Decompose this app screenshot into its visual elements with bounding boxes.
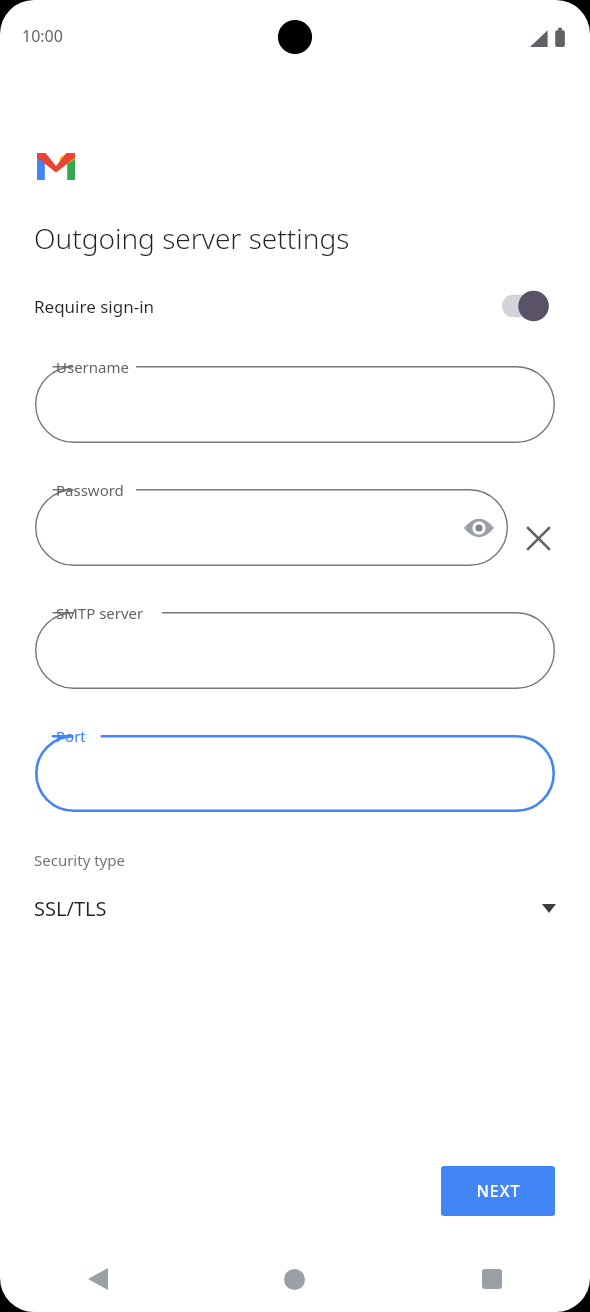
button[interactable]: Port (35, 735, 555, 812)
button[interactable]: Password (35, 489, 508, 566)
button[interactable]: Recent apps (393, 1246, 590, 1312)
button[interactable]: NEXT (441, 1166, 555, 1216)
staticText: Password (56, 480, 124, 500)
staticText: SMTP server (56, 603, 144, 623)
staticText: NEXT (476, 1180, 521, 1202)
button[interactable]: Back (0, 1246, 196, 1312)
button[interactable]: Require sign-in toggle (502, 289, 556, 323)
staticText: Outgoing server settings (34, 219, 350, 257)
staticText: Username (56, 357, 129, 377)
button[interactable]: Username (35, 366, 555, 443)
button[interactable]: Show password (457, 506, 501, 550)
button[interactable]: SMTP server (35, 612, 555, 689)
button[interactable]: Require sign-in (0, 284, 590, 328)
button[interactable]: SSL/TLS (0, 880, 590, 936)
button[interactable]: Home (196, 1246, 393, 1312)
staticText: Security type (34, 850, 125, 870)
staticText: 10:00 (22, 25, 63, 47)
staticText: Require sign-in (34, 295, 155, 318)
staticText: SSL/TLS (34, 895, 107, 922)
staticText: Port (56, 726, 86, 746)
button[interactable]: Clear password (516, 516, 560, 560)
